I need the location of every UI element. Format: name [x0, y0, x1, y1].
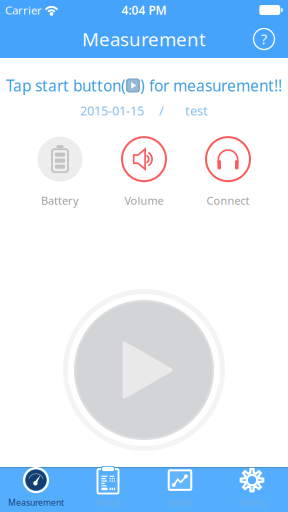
staticText: Result	[96, 497, 120, 508]
button[interactable]: Volume	[102, 136, 186, 208]
staticText: Graph	[168, 497, 192, 508]
staticText: Tap start button(	[6, 75, 126, 96]
staticText: Measurement	[82, 26, 206, 52]
staticText: ) for measurement!!	[140, 75, 282, 96]
button[interactable]: Start measurement	[63, 289, 225, 451]
button[interactable]: Result	[72, 467, 144, 512]
button[interactable]: Connect	[186, 136, 270, 208]
staticText: 2015-01-15	[80, 102, 144, 119]
staticText: Connect	[206, 193, 249, 208]
staticText: Volume	[124, 193, 163, 208]
button[interactable]: Graph	[144, 467, 216, 512]
staticText: /	[144, 102, 185, 119]
staticText: Measurement	[8, 497, 64, 508]
staticText: ?	[261, 29, 267, 49]
staticText: 4:04 PM	[121, 2, 166, 18]
button[interactable]: Measurement	[0, 467, 72, 512]
button[interactable]: Battery	[18, 136, 102, 208]
button[interactable]: Setting	[216, 467, 288, 512]
staticText: test	[185, 102, 208, 119]
staticText: Setting	[238, 497, 266, 508]
button[interactable]: Help	[247, 22, 281, 56]
staticText: Carrier	[5, 2, 42, 18]
staticText: Battery	[41, 193, 79, 208]
